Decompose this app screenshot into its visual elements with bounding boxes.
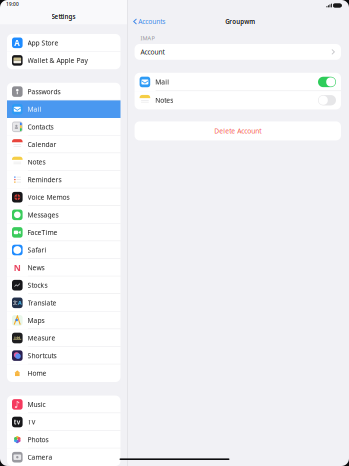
staticText: Shortcuts (28, 351, 57, 360)
button[interactable]: Mail (7, 100, 120, 118)
staticText: A (14, 37, 20, 48)
button[interactable]: Delete Account (135, 121, 341, 140)
staticText: Stocks (28, 281, 48, 290)
staticText: Accounts (138, 17, 165, 26)
staticText: Delete Account (214, 126, 261, 135)
staticText: A (18, 299, 22, 306)
staticText: tv (14, 418, 21, 426)
button[interactable]: A (7, 34, 120, 52)
staticText: Messages (28, 210, 59, 219)
button[interactable]: Shortcuts (7, 347, 120, 364)
button[interactable]: Mail (318, 77, 336, 87)
staticText: Calendar (28, 140, 57, 149)
button[interactable]: 文 (7, 294, 120, 312)
button[interactable]: Accounts (128, 14, 165, 29)
staticText: Safari (28, 245, 47, 255)
staticText: FaceTime (28, 228, 58, 237)
staticText: N (14, 262, 21, 273)
button[interactable]: Maps (7, 312, 120, 329)
staticText: Maps (28, 316, 45, 325)
button[interactable]: Account (135, 44, 341, 60)
button[interactable]: Photos (7, 431, 120, 448)
staticText: IMAP (141, 34, 155, 42)
staticText: ♪ (14, 399, 20, 410)
staticText: Wallet & Apple Pay (28, 56, 88, 65)
staticText: Reminders (28, 175, 62, 184)
staticText: Home (28, 369, 47, 378)
staticText: Music (28, 400, 46, 409)
staticText: Notes (155, 96, 173, 105)
staticText: Photos (28, 435, 49, 444)
staticText: Passwords (28, 87, 61, 96)
button[interactable]: Safari (7, 241, 120, 259)
staticText: 19:00 (6, 1, 19, 7)
staticText: Voice Memos (28, 193, 70, 202)
button[interactable]: tv (7, 413, 120, 431)
button[interactable]: FaceTime (7, 224, 120, 241)
button[interactable]: Voice Memos (7, 188, 120, 206)
button[interactable]: Contacts (7, 118, 120, 136)
staticText: Mail (28, 105, 42, 114)
staticText: News (28, 263, 45, 272)
button[interactable]: Stocks (7, 276, 120, 294)
button[interactable]: Reminders (7, 171, 120, 188)
button[interactable]: N (7, 259, 120, 276)
staticText: 文 (13, 299, 18, 306)
staticText: Contacts (28, 122, 54, 131)
button[interactable]: Wallet & Apple Pay (7, 52, 120, 69)
staticText: Settings (51, 12, 75, 21)
button[interactable]: Notes (7, 153, 120, 171)
button[interactable]: Passwords (7, 83, 120, 100)
staticText: Measure (28, 333, 56, 343)
staticText: Camera (28, 453, 53, 462)
button[interactable]: ♪ (7, 396, 120, 413)
button[interactable]: Home (7, 364, 120, 382)
staticText: App Store (28, 38, 59, 47)
button[interactable]: Notes (318, 95, 336, 105)
button[interactable]: Messages (7, 206, 120, 224)
button[interactable]: Measure (7, 329, 120, 347)
staticText: Translate (28, 298, 57, 307)
staticText: Groupwm (225, 17, 255, 26)
staticText: Account (141, 47, 165, 56)
staticText: TV (28, 417, 36, 427)
button[interactable]: Camera (7, 448, 120, 466)
staticText: Notes (28, 157, 46, 167)
staticText: Mail (155, 77, 169, 86)
button[interactable]: Calendar (7, 136, 120, 153)
